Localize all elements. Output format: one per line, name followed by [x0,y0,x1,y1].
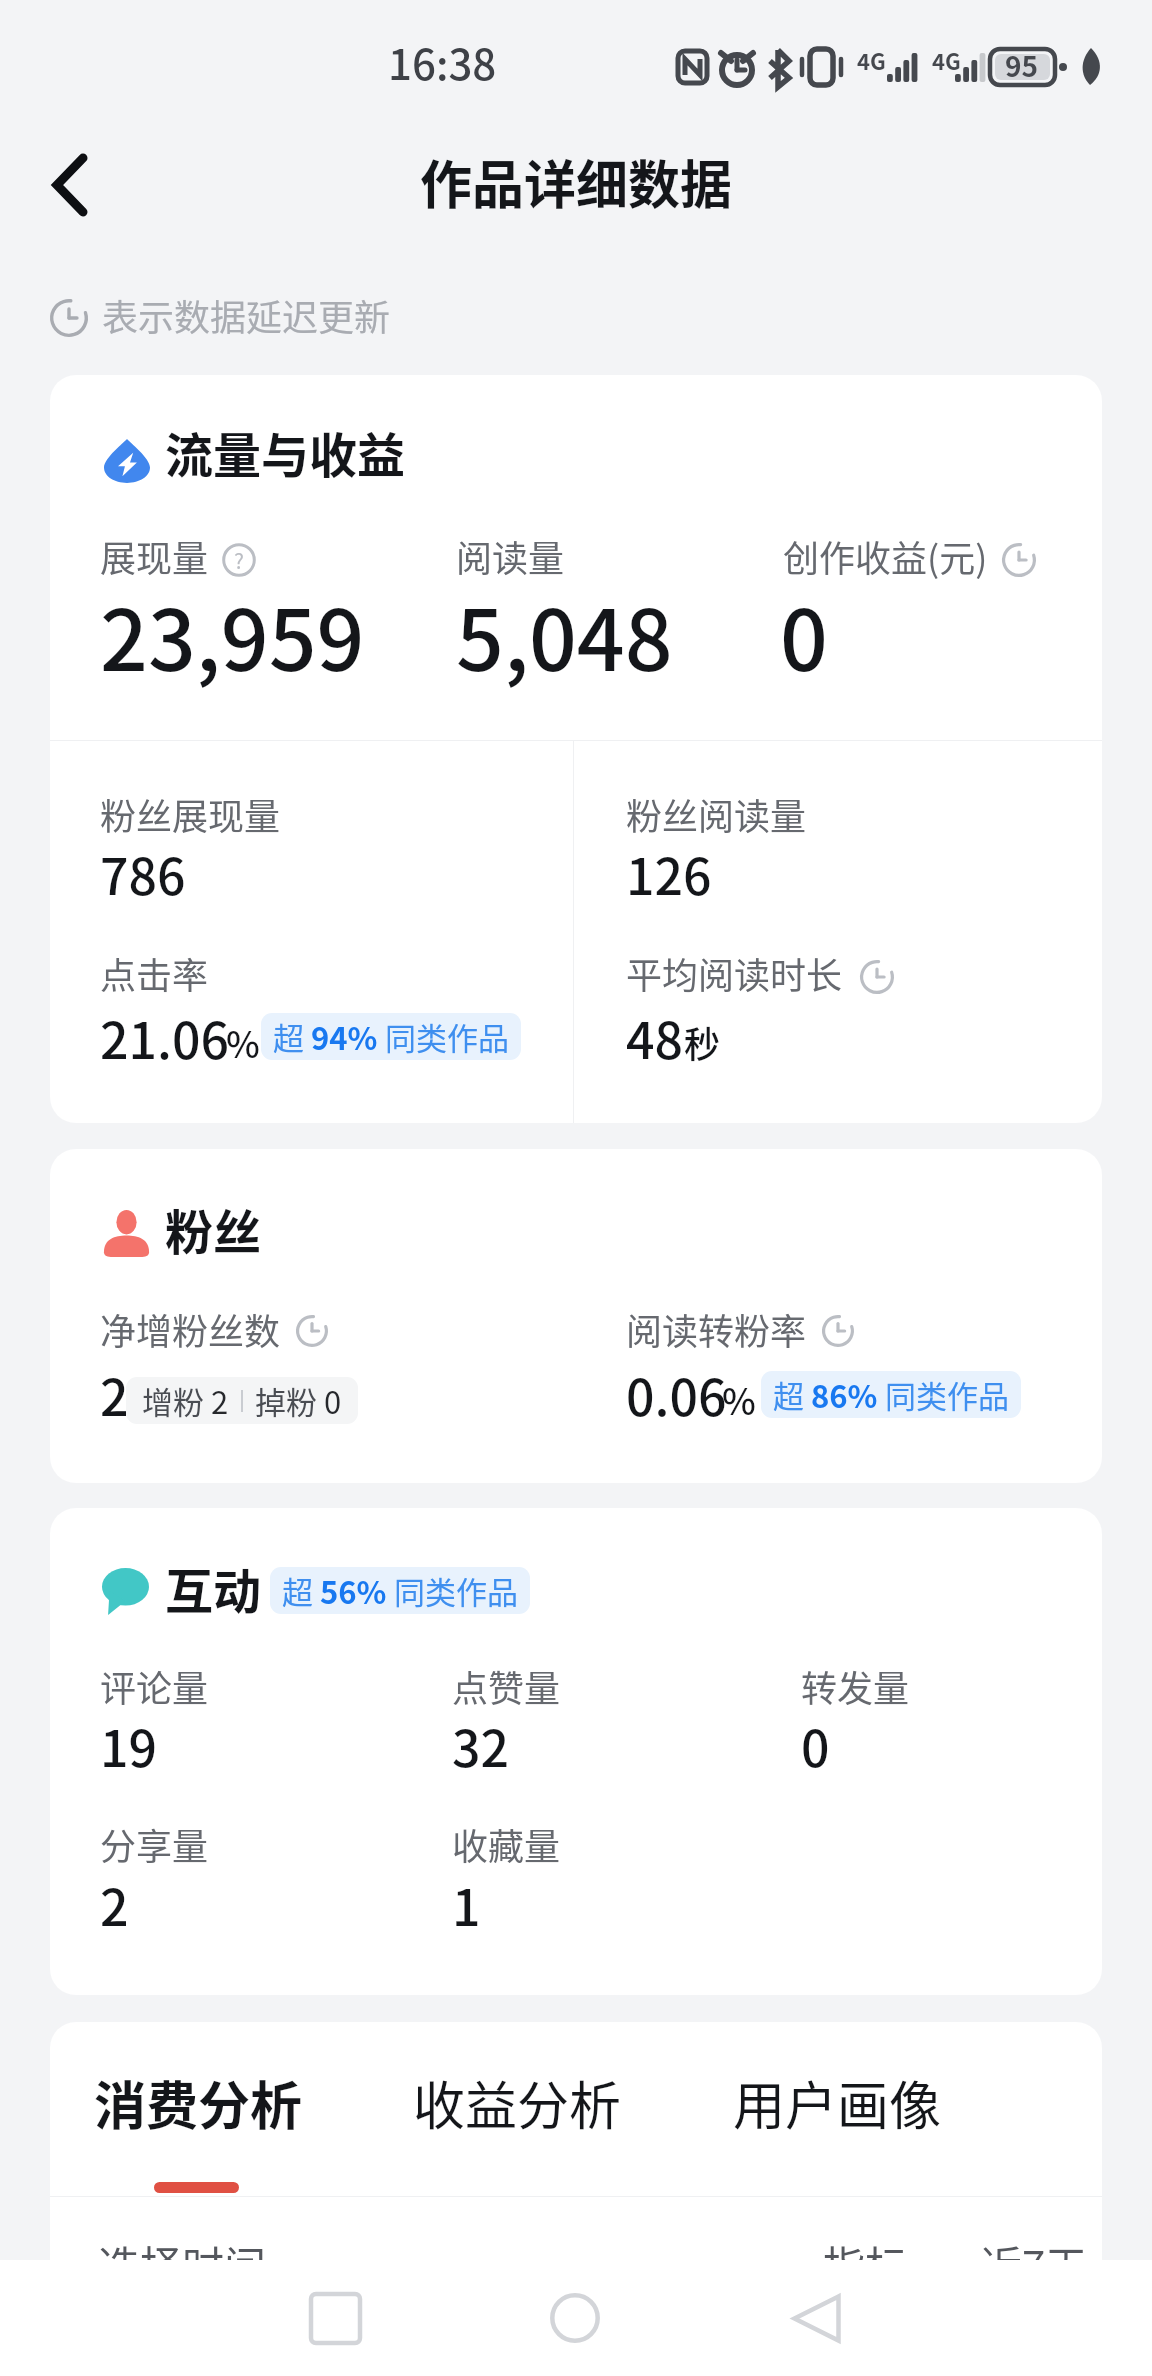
staticText: 4G [932,44,961,76]
staticText: 展现量 [100,530,209,582]
staticText: 126 [626,837,712,909]
staticText: 流量与收益 [165,417,406,487]
staticText: 0 [780,574,828,696]
staticText: 近7天 [980,2233,1088,2294]
staticText: 19 [100,1709,157,1781]
button[interactable]: 用户画像 [733,2065,942,2140]
staticText: 净增粉丝数 [100,1303,281,1355]
staticText: 94% [311,1014,378,1059]
staticText: 平均阅读时长 [626,947,843,999]
staticText: 5,048 [456,574,673,696]
staticText: 表示数据延迟更新 [102,289,391,341]
staticText: 56% [320,1568,387,1613]
staticText: 86% [811,1372,878,1417]
staticText: 95 [1005,45,1039,86]
staticText: 0.06 [626,1358,727,1430]
button[interactable]: 互动 [50,1508,1102,1995]
staticText: 阅读量 [456,530,565,582]
button[interactable]: 流量与收益 [50,375,1102,1123]
staticText: 2 [100,1868,129,1940]
staticText: 同类作品 [387,1568,518,1613]
staticText: 16:38 [388,31,497,92]
staticText: 1 [452,1868,481,1940]
staticText: 转发量 [801,1660,910,1712]
staticText: % [722,1373,756,1425]
button[interactable]: Recents [275,2260,395,2376]
staticText: 粉丝阅读量 [626,788,807,840]
staticText: 选择时间 [98,2233,267,2294]
staticText: % [226,1016,260,1068]
staticText: 粉丝 [165,1194,262,1264]
staticText: 评论量 [100,1660,209,1712]
staticText: 超 [773,1372,811,1417]
staticText: ? [234,545,244,575]
staticText: 用户画像 [733,2065,942,2140]
button[interactable]: 粉丝 [50,1149,1102,1483]
staticText: 点击率 [100,947,209,999]
staticText: 消费分析 [94,2065,303,2140]
staticText: 23,959 [100,574,365,696]
button[interactable]: 返回 [20,135,120,235]
button[interactable]: 说明 [222,543,256,577]
staticText: 掉粉 [255,1378,324,1423]
staticText: 48 [626,1001,683,1073]
staticText: 阅读转粉率 [626,1303,807,1355]
staticText: 4G [857,44,886,76]
staticText: 超 [273,1014,311,1059]
staticText: 创作收益(元) [783,530,988,582]
staticText: 786 [100,837,186,909]
staticText: 指标 [823,2233,908,2294]
staticText: 点赞量 [452,1660,561,1712]
staticText: 互动 [165,1553,262,1623]
staticText: 2 [100,1358,129,1430]
button[interactable]: 收益分析 [413,2065,622,2140]
staticText: 秒 [684,1016,721,1068]
staticText: 分享量 [100,1818,209,1870]
staticText: 粉丝展现量 [100,788,281,840]
staticText: 0 [324,1378,342,1423]
staticText: 收益分析 [413,2065,622,2140]
button[interactable]: 数据分析 [50,2022,1102,2322]
staticText: 超 [282,1568,320,1613]
staticText: 2 [211,1378,229,1423]
staticText: 作品详细数据 [420,144,733,219]
staticText: 增粉 [142,1378,211,1423]
staticText: 收藏量 [452,1818,561,1870]
button[interactable]: 消费分析 [94,2065,303,2193]
staticText: 0 [801,1709,830,1781]
staticText: 同类作品 [378,1014,509,1059]
button[interactable]: Home [515,2260,635,2376]
staticText: 21.06 [100,1001,229,1073]
staticText: 同类作品 [878,1372,1009,1417]
button[interactable]: Back [756,2260,876,2376]
staticText: 32 [452,1709,509,1781]
